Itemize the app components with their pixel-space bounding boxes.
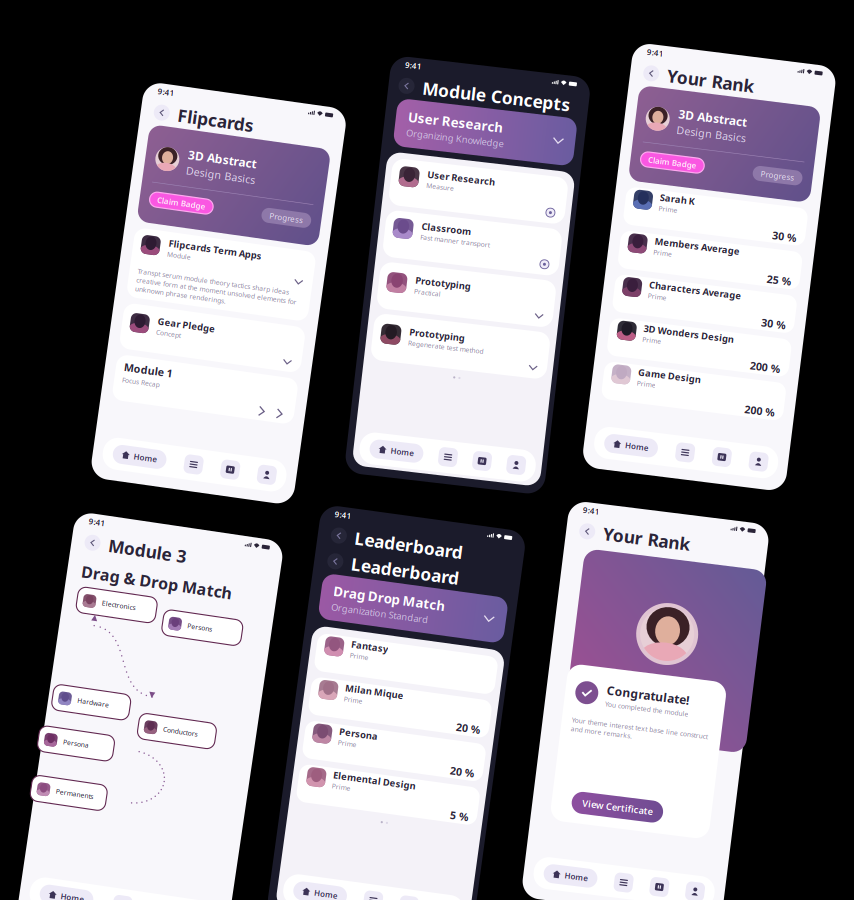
button[interactable]: Modules — [417, 880, 436, 899]
button[interactable]: Flipcards Term Apps — [156, 227, 339, 297]
staticText: Game Design — [679, 362, 742, 375]
staticText: 200 % — [789, 385, 820, 399]
button[interactable]: Electronics — [90, 585, 170, 611]
staticText: Prime — [370, 777, 389, 786]
staticText: Gear Pledge — [191, 311, 249, 323]
button[interactable]: Home — [654, 433, 708, 452]
button[interactable]: Prototyping — [405, 261, 582, 308]
staticText: 9:41 — [159, 84, 176, 94]
staticText: Drag Drop Match — [345, 579, 458, 597]
staticText: Persona — [370, 720, 409, 733]
staticText: 9:41 — [406, 58, 423, 68]
staticText: Prime — [679, 243, 698, 252]
staticText: Drag & Drop Match — [90, 559, 242, 580]
button[interactable]: Gear Pledge — [156, 303, 339, 349]
staticText: Module Concepts — [426, 72, 575, 95]
button[interactable]: Progress — [279, 189, 329, 204]
button[interactable]: Previous card — [304, 387, 309, 396]
staticText: Prime — [370, 689, 389, 698]
button[interactable]: Persons — [178, 595, 258, 621]
button[interactable]: Persona — [72, 728, 148, 754]
staticText: Sarah K — [679, 186, 714, 199]
button[interactable]: Classroom — [405, 209, 582, 256]
button[interactable]: Modules — [661, 863, 680, 882]
staticText: Leaderboard — [359, 521, 468, 544]
staticText: Characters Average — [679, 274, 772, 287]
staticText: Focus Recap — [164, 375, 202, 384]
staticText: Members Average — [679, 230, 765, 243]
staticText: Persona — [97, 737, 123, 745]
button[interactable]: User Research — [405, 157, 582, 204]
staticText: Organizing Knowledge — [415, 124, 513, 137]
button[interactable]: Prototyping — [405, 313, 582, 360]
staticText: 9:41 — [90, 514, 107, 524]
button[interactable]: View Certificate — [609, 788, 701, 810]
button[interactable]: Home — [415, 438, 469, 457]
staticText: Home — [675, 438, 699, 448]
staticText: Regenerate test method — [441, 334, 517, 343]
button[interactable]: Hardware — [80, 685, 158, 711]
button[interactable]: Claim Badge — [655, 149, 719, 164]
staticText: Classroom — [441, 215, 491, 227]
button[interactable]: Modules — [726, 433, 745, 452]
staticText: 5 % — [491, 787, 510, 801]
button[interactable]: Cards — [519, 438, 538, 457]
button[interactable]: Back — [583, 521, 599, 537]
staticText: Home — [436, 443, 460, 453]
staticText: Practical — [441, 282, 468, 291]
staticText: Module 3 — [113, 528, 192, 551]
button[interactable]: Back — [335, 525, 351, 541]
button[interactable]: Home — [590, 863, 644, 882]
staticText: Congratulate! — [630, 676, 713, 692]
staticText: Measure — [441, 176, 469, 185]
staticText: 9:41 — [336, 507, 353, 517]
button[interactable]: Cards — [453, 880, 472, 899]
button[interactable]: Permanents — [72, 778, 148, 804]
staticText: Your theme interest text base line const… — [599, 713, 736, 731]
button[interactable]: Back — [89, 532, 105, 548]
staticText: Home — [117, 889, 141, 899]
staticText: 200 % — [789, 341, 820, 355]
staticText: View Certificate — [619, 793, 690, 805]
button[interactable]: Home — [346, 880, 400, 899]
staticText: User Research — [415, 105, 511, 123]
staticText: 3D Abstract — [198, 140, 267, 155]
staticText: Progress — [287, 191, 321, 202]
button[interactable]: Conductors — [169, 701, 247, 727]
button[interactable]: Back — [402, 76, 418, 92]
staticText: Prime — [679, 287, 698, 296]
staticText: Prime — [679, 199, 698, 208]
button[interactable]: Back — [647, 63, 663, 79]
button[interactable]: Back — [335, 551, 351, 567]
button[interactable]: Cards — [697, 863, 716, 882]
button[interactable]: Home — [165, 444, 219, 463]
staticText: Flipcards — [182, 98, 259, 121]
staticText: Permanents — [97, 787, 135, 795]
staticText: 30 % — [795, 297, 820, 311]
staticText: You completed the module — [630, 693, 714, 702]
staticText: 9:41 — [584, 503, 601, 513]
staticText: Design Basics — [687, 117, 757, 131]
staticText: Fantasy — [370, 632, 407, 645]
button[interactable]: Modules — [484, 438, 503, 457]
staticText: Prime — [679, 375, 698, 384]
button[interactable]: Back — [158, 102, 174, 118]
button[interactable]: Claim Badge — [166, 189, 230, 204]
button[interactable]: Home — [96, 884, 150, 900]
staticText: Module — [191, 245, 215, 254]
button[interactable]: Progress — [768, 149, 818, 164]
button[interactable]: Modules — [237, 444, 256, 463]
staticText: Design Basics — [198, 157, 268, 171]
